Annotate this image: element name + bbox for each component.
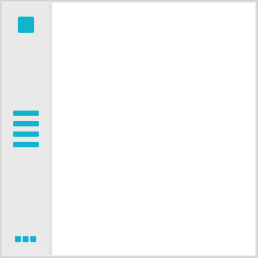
button[interactable]: Menu item 2 <box>13 121 39 126</box>
button[interactable]: More <box>15 236 36 242</box>
button[interactable]: Menu item 3 <box>13 131 39 137</box>
button[interactable]: App <box>18 17 34 33</box>
button[interactable]: Menu item 1 <box>13 111 39 116</box>
button[interactable]: Menu item 4 <box>13 142 39 147</box>
